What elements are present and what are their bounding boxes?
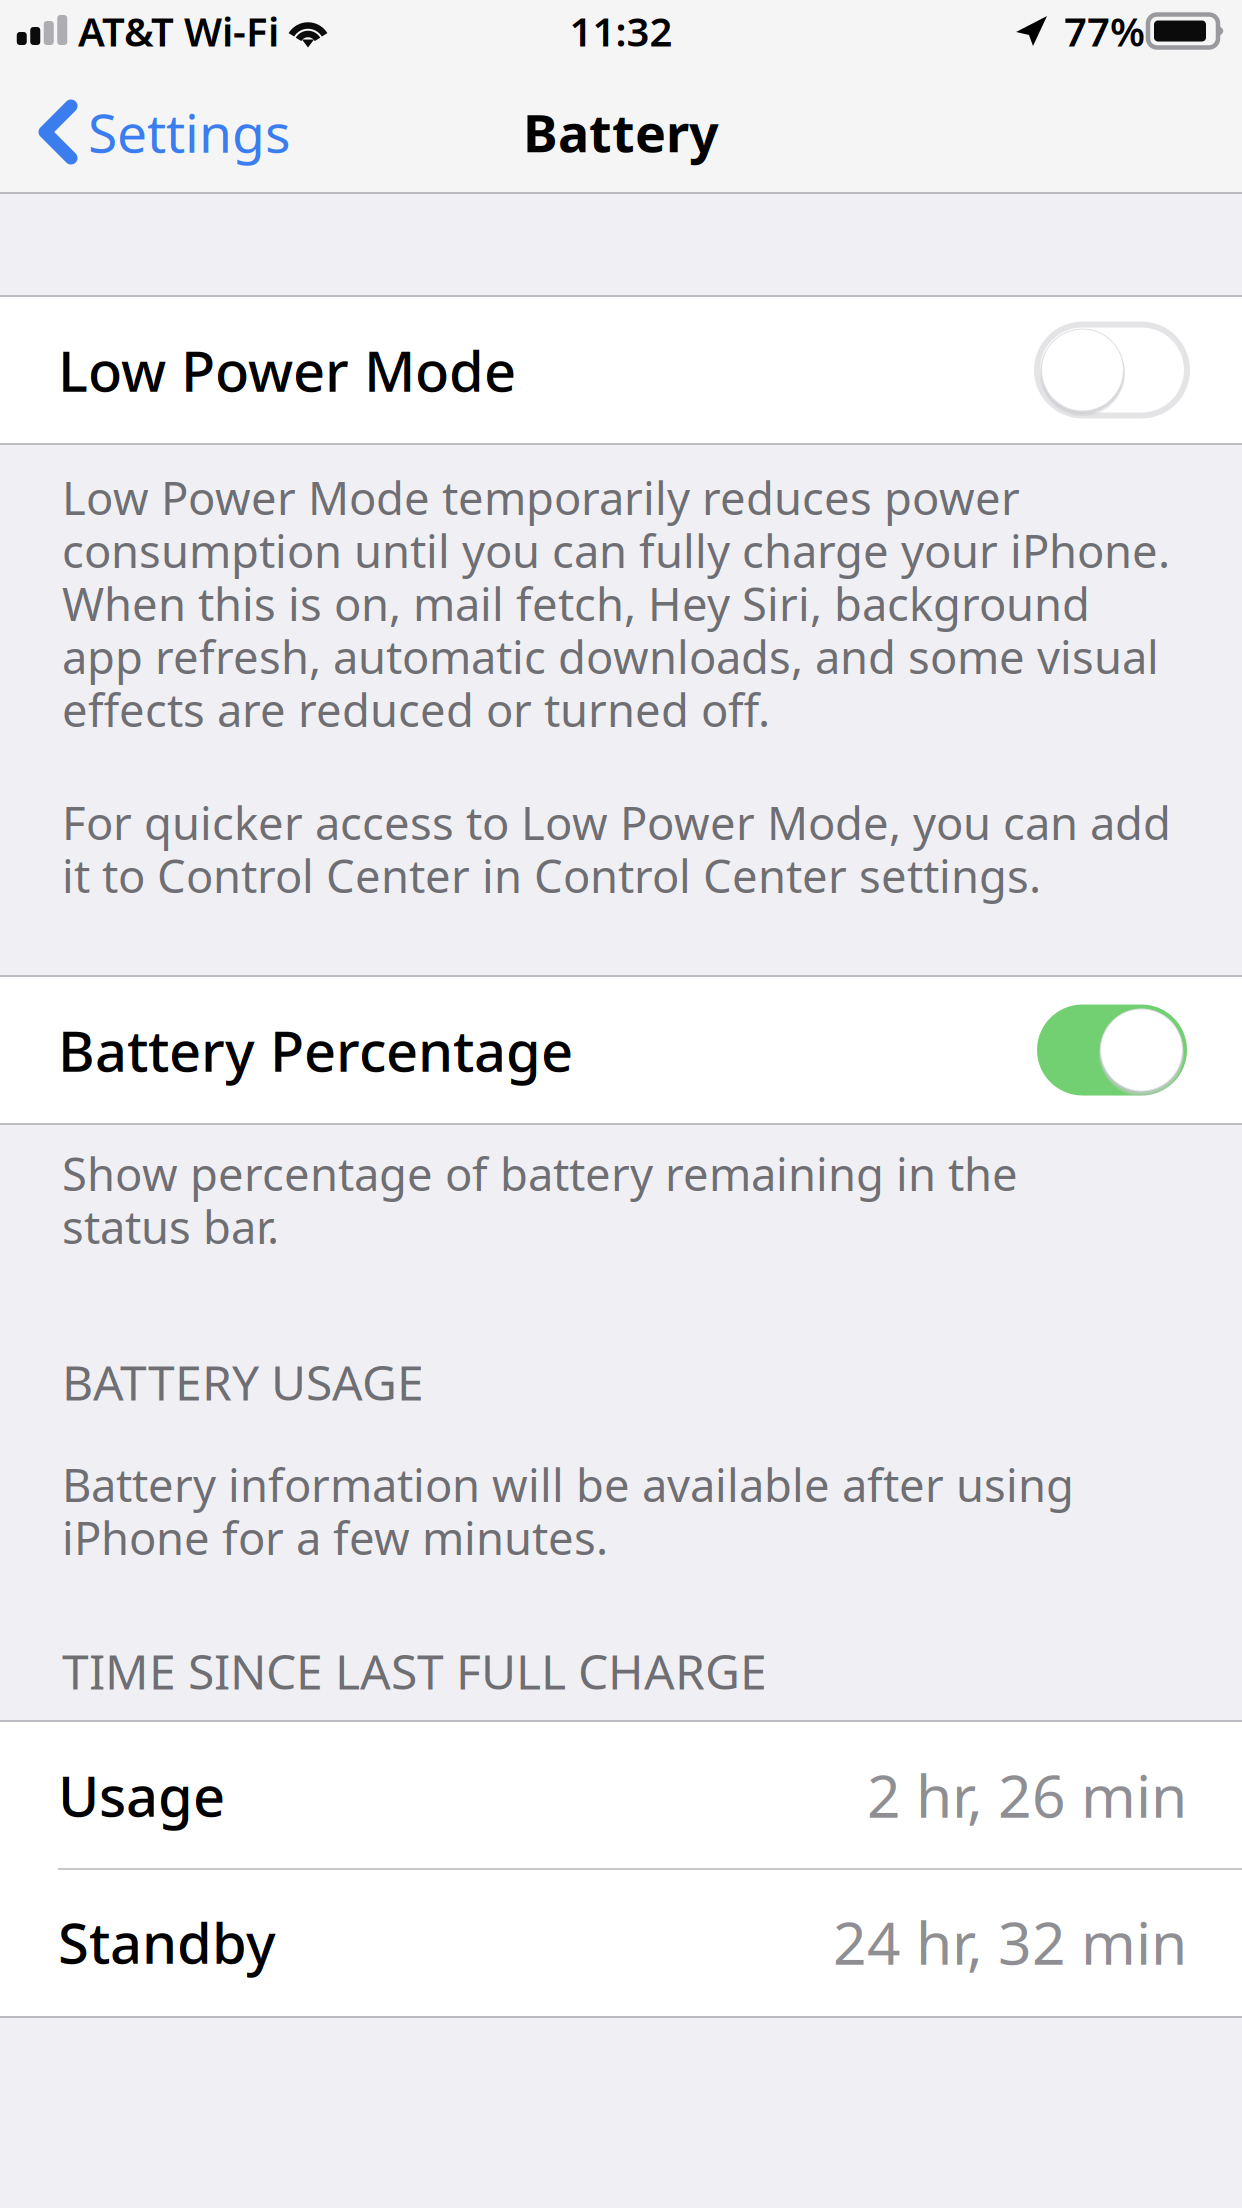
staticText: status bar. <box>62 1196 279 1257</box>
button[interactable]: Usage <box>0 1722 1242 1868</box>
staticText: Battery information will be available af… <box>62 1454 1074 1515</box>
staticText: 24 hr, 32 min <box>833 1903 1187 1981</box>
staticText: Show percentage of battery remaining in … <box>62 1143 1018 1204</box>
staticText: For quicker access to Low Power Mode, yo… <box>62 792 1171 853</box>
staticText: TIME SINCE LAST FULL CHARGE <box>62 1639 767 1703</box>
staticText: it to Control Center in Control Center s… <box>62 845 1041 906</box>
staticText: 77% <box>1064 4 1145 57</box>
staticText: iPhone for a few minutes. <box>62 1507 608 1568</box>
staticText: Battery <box>523 97 719 167</box>
staticText: 2 hr, 26 min <box>867 1756 1187 1834</box>
button[interactable]: Back to Settings <box>38 72 468 192</box>
staticText: Standby <box>58 1905 276 1979</box>
staticText: consumption until you can fully charge y… <box>62 520 1170 581</box>
button[interactable]: Low Power Mode <box>0 297 1242 443</box>
staticText: Low Power Mode temporarily reduces power <box>62 467 1020 528</box>
staticText: Low Power Mode <box>58 333 516 407</box>
staticText: 11:32 <box>569 4 672 57</box>
button[interactable]: Standby <box>0 1868 1242 2016</box>
staticText: effects are reduced or turned off. <box>62 679 770 740</box>
staticText: Usage <box>58 1758 225 1832</box>
staticText: When this is on, mail fetch, Hey Siri, b… <box>62 573 1090 634</box>
staticText: app refresh, automatic downloads, and so… <box>62 626 1159 687</box>
staticText: AT&T Wi-Fi <box>78 4 279 57</box>
staticText: BATTERY USAGE <box>62 1350 424 1414</box>
button[interactable]: Battery Percentage <box>0 977 1242 1123</box>
staticText: Settings <box>88 97 291 167</box>
staticText: Battery Percentage <box>58 1013 573 1087</box>
